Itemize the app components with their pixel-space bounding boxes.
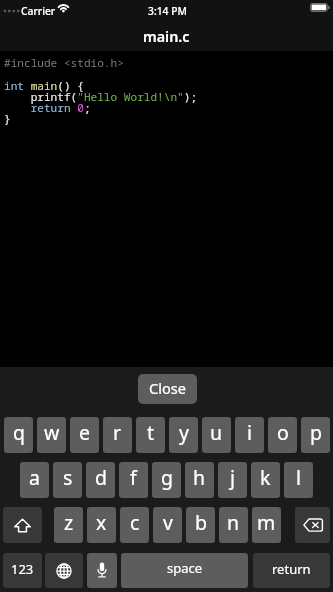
- staticText: g: [161, 464, 173, 491]
- staticText: j: [230, 464, 236, 491]
- button[interactable]: i: [235, 417, 264, 453]
- button[interactable]: y: [169, 417, 198, 453]
- staticText: n: [227, 509, 240, 536]
- staticText: f: [130, 464, 137, 491]
- staticText: Close: [149, 378, 187, 398]
- staticText: Carrier: [21, 4, 56, 18]
- staticText: return: [272, 560, 311, 578]
- staticText: q: [13, 419, 25, 446]
- staticText: r: [113, 419, 122, 446]
- staticText: u: [210, 419, 223, 446]
- staticText: #include <stdio.h>: [4, 55, 124, 70]
- button[interactable]: Shift: [3, 507, 42, 543]
- button[interactable]: w: [37, 417, 66, 453]
- button[interactable]: q: [4, 417, 33, 453]
- button[interactable]: s: [53, 462, 82, 498]
- staticText: p: [310, 419, 322, 446]
- staticText: v: [163, 509, 173, 536]
- staticText: a: [29, 464, 40, 491]
- staticText: y: [179, 419, 189, 446]
- staticText: d: [95, 464, 107, 491]
- staticText: }: [4, 111, 11, 126]
- staticText: return 0;: [4, 100, 91, 115]
- staticText: space: [167, 559, 203, 577]
- staticText: s: [63, 464, 73, 491]
- staticText: l: [296, 464, 302, 491]
- staticText: int main() {: [4, 78, 84, 93]
- staticText: w: [44, 419, 60, 446]
- button[interactable]: p: [301, 417, 330, 453]
- button[interactable]: f: [119, 462, 148, 498]
- button[interactable]: j: [218, 462, 247, 498]
- staticText: c: [130, 509, 140, 536]
- button[interactable]: r: [103, 417, 132, 453]
- button[interactable]: z: [54, 507, 83, 543]
- button[interactable]: t: [136, 417, 165, 453]
- button[interactable]: x: [87, 507, 116, 543]
- staticText: 123: [11, 560, 34, 578]
- staticText: i: [247, 419, 253, 446]
- button[interactable]: Dictate: [87, 553, 117, 588]
- button[interactable]: Close: [138, 374, 197, 404]
- staticText: z: [64, 509, 74, 536]
- staticText: printf("Hello World!\n");: [4, 89, 198, 104]
- button[interactable]: 123: [3, 553, 42, 588]
- staticText: b: [195, 509, 207, 536]
- staticText: t: [147, 419, 155, 446]
- button[interactable]: k: [251, 462, 280, 498]
- button[interactable]: e: [70, 417, 99, 453]
- staticText: k: [260, 464, 271, 491]
- staticText: m: [257, 509, 276, 536]
- staticText: h: [193, 464, 206, 491]
- staticText: x: [96, 509, 107, 536]
- staticText: o: [277, 419, 289, 446]
- staticText: e: [79, 419, 90, 446]
- button[interactable]: n: [219, 507, 248, 543]
- button[interactable]: Switch keyboard: [45, 553, 83, 588]
- button[interactable]: a: [20, 462, 49, 498]
- button[interactable]: o: [268, 417, 297, 453]
- button[interactable]: h: [185, 462, 214, 498]
- button[interactable]: b: [186, 507, 215, 543]
- button[interactable]: space: [121, 553, 248, 588]
- button[interactable]: l: [284, 462, 313, 498]
- button[interactable]: c: [120, 507, 149, 543]
- button[interactable]: u: [202, 417, 231, 453]
- button[interactable]: return: [253, 553, 330, 588]
- staticText: 3:14 PM: [148, 4, 187, 18]
- button[interactable]: m: [252, 507, 281, 543]
- button[interactable]: v: [153, 507, 182, 543]
- button[interactable]: Backspace: [295, 507, 330, 543]
- button[interactable]: g: [152, 462, 181, 498]
- staticText: main.c: [143, 27, 190, 46]
- button[interactable]: d: [86, 462, 115, 498]
